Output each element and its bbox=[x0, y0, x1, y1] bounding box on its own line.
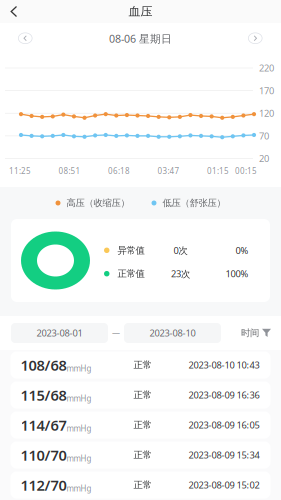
staticText: 2023-08-01 bbox=[36, 327, 82, 339]
staticText: 120 bbox=[259, 107, 274, 119]
staticText: 正常值 bbox=[117, 268, 144, 279]
staticText: 0次 bbox=[173, 244, 187, 256]
staticText: 2023-08-09 15:02 bbox=[188, 479, 259, 491]
staticText: mmHg bbox=[66, 453, 91, 464]
staticText: 异常值 bbox=[117, 245, 144, 256]
staticText: 112/70 bbox=[20, 475, 66, 495]
staticText: mmHg bbox=[66, 393, 91, 404]
staticText: 00:15 bbox=[235, 166, 257, 176]
staticText: 正常 bbox=[133, 389, 151, 401]
staticText: 2023-08-10 bbox=[149, 327, 195, 339]
staticText: 高压（收缩压） bbox=[66, 197, 129, 209]
staticText: 08:51 bbox=[58, 166, 80, 176]
button[interactable]: 112/70 bbox=[0, 470, 281, 500]
staticText: 低压（舒张压） bbox=[162, 197, 225, 209]
button[interactable]: Next day bbox=[248, 32, 263, 44]
button[interactable]: Previous day bbox=[18, 32, 33, 44]
staticText: 23次 bbox=[171, 267, 190, 280]
staticText: 2023-08-09 16:05 bbox=[188, 419, 259, 431]
button[interactable]: 115/68 bbox=[0, 380, 281, 410]
staticText: 11:25 bbox=[9, 166, 31, 176]
button[interactable]: 108/68 bbox=[0, 350, 281, 380]
staticText: 2023-08-09 16:36 bbox=[188, 389, 259, 401]
staticText: 114/67 bbox=[20, 415, 66, 435]
staticText: 06:18 bbox=[108, 166, 130, 176]
staticText: mmHg bbox=[66, 423, 91, 434]
button[interactable]: 2023-08-10 bbox=[124, 323, 221, 343]
staticText: 正常 bbox=[133, 359, 151, 371]
staticText: 08-06 星期日 bbox=[109, 31, 172, 46]
staticText: 0% bbox=[235, 244, 248, 256]
staticText: 70 bbox=[259, 130, 269, 142]
staticText: 170 bbox=[259, 84, 274, 97]
button[interactable]: 114/67 bbox=[0, 410, 281, 440]
staticText: — bbox=[112, 328, 120, 338]
staticText: 时间 bbox=[241, 327, 259, 339]
staticText: mmHg bbox=[66, 363, 91, 374]
staticText: 115/68 bbox=[20, 385, 66, 405]
button[interactable]: 110/70 bbox=[0, 440, 281, 470]
staticText: 100% bbox=[225, 267, 248, 280]
staticText: 220 bbox=[259, 62, 274, 74]
staticText: 正常 bbox=[133, 479, 151, 491]
button[interactable]: 时间 bbox=[241, 327, 281, 339]
staticText: 108/68 bbox=[20, 355, 66, 375]
button[interactable]: Back bbox=[0, 0, 28, 23]
staticText: 正常 bbox=[133, 419, 151, 431]
staticText: 01:15 bbox=[207, 166, 229, 176]
staticText: mmHg bbox=[66, 483, 91, 494]
staticText: 正常 bbox=[133, 449, 151, 461]
staticText: 血压 bbox=[128, 4, 152, 19]
staticText: 2023-08-09 15:34 bbox=[188, 449, 259, 461]
button[interactable]: 2023-08-01 bbox=[11, 323, 108, 343]
staticText: 03:47 bbox=[157, 166, 179, 176]
staticText: 20 bbox=[259, 152, 269, 165]
staticText: 2023-08-10 10:43 bbox=[188, 359, 259, 371]
staticText: 110/70 bbox=[20, 445, 66, 465]
